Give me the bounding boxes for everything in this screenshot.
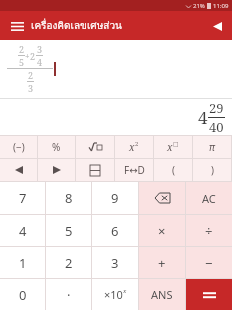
button[interactable]: % [38,136,75,158]
staticText: 3 [37,43,43,55]
staticText: x [129,140,135,154]
staticText: · [67,286,71,304]
staticText: 6 [111,222,119,240]
staticText: 4 [198,106,208,129]
staticText: ANS [151,287,173,302]
button[interactable]: 5 [46,215,91,246]
button[interactable]: ( [154,159,192,181]
staticText: ÷ [205,222,213,240]
staticText: AC [202,191,216,206]
button[interactable]: ANS [139,279,185,310]
staticText: 29 [209,99,224,117]
button[interactable]: x [115,136,153,158]
button[interactable]: 7 [0,182,45,214]
button[interactable]: x [154,136,192,158]
staticText: 3 [28,82,34,94]
staticText: เครื่องคิดเลขเศษส่วน [31,18,122,34]
button[interactable]: 6 [92,215,138,246]
staticText: 3 [111,254,119,272]
button[interactable]: · [46,279,91,310]
button[interactable]: ) [193,159,231,181]
staticText: 1 [19,254,27,272]
staticText: 40 [209,118,224,135]
staticText: ×10 [104,287,123,302]
button[interactable]: Delete [139,182,185,214]
button[interactable]: Equals [186,279,232,310]
staticText: 7 [19,189,27,207]
staticText: 0 [19,286,27,304]
button[interactable]: 8 [46,182,91,214]
staticText: × [158,222,166,240]
staticText: 2 [19,43,25,55]
button[interactable]: Menu [6,15,28,37]
button[interactable]: Right [38,159,75,181]
staticText: 5 [19,56,25,68]
button[interactable]: 9 [92,182,138,214]
staticText: 2 [135,140,139,148]
staticText: ( [172,163,175,177]
staticText: − [205,254,213,272]
button[interactable]: F↔D [115,159,153,181]
button[interactable]: π [193,136,231,158]
button[interactable]: 3 [92,247,138,278]
button[interactable]: Fraction [76,159,114,181]
button[interactable]: 4 [0,215,45,246]
staticText: (−) [13,140,25,154]
button[interactable]: + [139,247,185,278]
staticText: + [25,50,30,61]
button[interactable]: ÷ [186,215,232,246]
staticText: 2 [65,254,73,272]
staticText: 4 [19,222,27,240]
staticText: 8 [65,189,73,207]
staticText: 21% [193,2,205,10]
staticText: F↔D [124,163,145,177]
staticText: π [209,140,215,154]
staticText: % [52,140,61,154]
button[interactable]: − [186,247,232,278]
button[interactable]: Back [207,16,227,36]
staticText: 5 [65,222,73,240]
staticText: 2 [28,69,34,81]
button[interactable]: AC [186,182,232,214]
button[interactable]: (−) [0,136,37,158]
staticText: 2 [30,50,36,62]
button[interactable]: 2 [46,247,91,278]
button[interactable]: ×10 [92,279,138,310]
staticText: + [158,254,166,272]
button[interactable]: 1 [0,247,45,278]
button[interactable]: × [139,215,185,246]
staticText: x [123,287,127,295]
staticText: □ [173,140,179,147]
button[interactable]: 0 [0,279,45,310]
button[interactable]: Square root [76,136,114,158]
staticText: 11:09 [213,2,229,10]
staticText: 4 [37,56,43,68]
staticText: 9 [111,189,119,207]
staticText: ) [211,163,214,177]
staticText: x [167,140,173,154]
button[interactable]: Left [0,159,37,181]
